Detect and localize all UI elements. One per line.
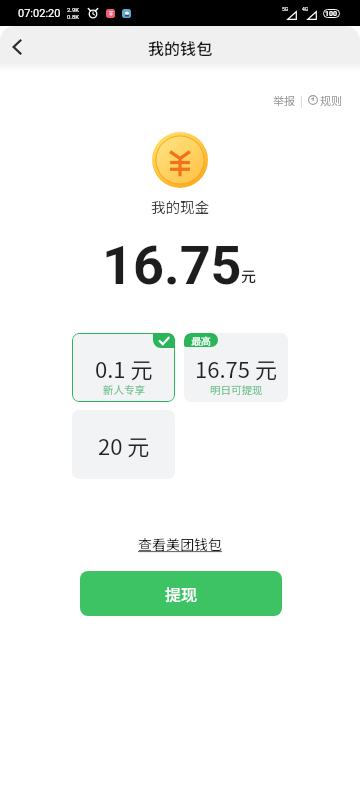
- button[interactable]: 查看美团钱包: [0, 534, 360, 554]
- button[interactable]: Back: [0, 28, 37, 66]
- button[interactable]: 20 元: [72, 410, 175, 479]
- staticText: |: [300, 92, 303, 108]
- staticText: 16.75 元: [195, 352, 277, 384]
- staticText: 2.9K: [67, 6, 80, 13]
- staticText: 元: [241, 265, 257, 287]
- staticText: 100: [325, 10, 338, 18]
- staticText: 07:02:20: [18, 7, 61, 20]
- button[interactable]: 0.1 元: [72, 333, 175, 402]
- staticText: 16.75: [102, 234, 242, 297]
- staticText: 我的现金: [151, 196, 209, 217]
- staticText: 新人专享: [103, 382, 145, 397]
- staticText: 规则: [320, 92, 342, 108]
- staticText: 提现: [165, 582, 198, 605]
- staticText: 20 元: [98, 429, 150, 461]
- staticText: 5G: [282, 6, 289, 12]
- button[interactable]: 提现: [80, 571, 282, 616]
- staticText: 最高: [191, 333, 211, 347]
- staticText: 4G: [302, 6, 309, 12]
- staticText: 0.1 元: [95, 352, 153, 384]
- staticText: 0.8K: [67, 13, 80, 20]
- button[interactable]: 规则: [306, 88, 344, 112]
- staticText: 明日可提现: [210, 382, 263, 397]
- staticText: 我的钱包: [148, 36, 213, 59]
- button[interactable]: 16.75 元: [184, 333, 288, 402]
- button[interactable]: 举报: [271, 88, 297, 112]
